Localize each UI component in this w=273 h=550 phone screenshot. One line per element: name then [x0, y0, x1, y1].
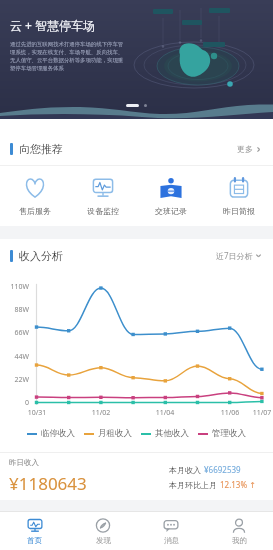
staticText: 12.13% ↑ — [220, 479, 256, 490]
staticText: 设备监控 — [87, 206, 119, 216]
staticText: 消息 — [164, 536, 179, 545]
button[interactable]: 交班记录 — [137, 166, 205, 226]
button[interactable]: 其他收入 — [141, 428, 189, 439]
staticText: 云 + 智慧停车场 — [10, 17, 96, 33]
staticText: 11/06 — [217, 408, 243, 418]
button[interactable]: 更多 — [237, 144, 262, 154]
staticText: 管理收入 — [212, 428, 246, 439]
button[interactable]: 管理收入 — [198, 428, 246, 439]
staticText: 首页 — [27, 536, 42, 545]
staticText: 我的 — [232, 536, 247, 545]
staticText: 售后服务 — [19, 206, 51, 216]
button[interactable]: 近7日分析 — [216, 250, 262, 261]
staticText: 10/31 — [24, 408, 50, 418]
staticText: 交班记录 — [155, 206, 187, 216]
staticText: 11/02 — [88, 408, 114, 418]
staticText: 收入分析 — [19, 249, 63, 263]
button[interactable]: 昨日简报 — [205, 166, 273, 226]
staticText: 更多 — [237, 144, 253, 154]
button[interactable]: 售后服务 — [0, 166, 69, 226]
staticText: 昨日简报 — [223, 206, 255, 216]
staticText: ¥6692539 — [204, 464, 241, 475]
staticText: 通过先进的互联网技术打通停车场的线下停车管理系统，实现在线支付、车场导航、反向找… — [10, 41, 126, 72]
staticText: ¥1180643 — [9, 472, 87, 495]
staticText: 0 — [0, 398, 29, 408]
staticText: 66W — [0, 328, 29, 338]
staticText: 44W — [0, 352, 29, 362]
button[interactable]: 消息 — [137, 512, 205, 550]
staticText: 月租收入 — [98, 428, 132, 439]
button[interactable]: 设备监控 — [69, 166, 137, 226]
staticText: 11/07 — [249, 408, 273, 418]
button[interactable]: 月租收入 — [84, 428, 132, 439]
button[interactable]: 临停收入 — [27, 428, 75, 439]
staticText: 22W — [0, 375, 29, 385]
staticText: 近7日分析 — [216, 250, 253, 261]
staticText: 11/04 — [152, 408, 178, 418]
staticText: 临停收入 — [41, 428, 75, 439]
staticText: 110W — [0, 282, 29, 292]
staticText: 88W — [0, 305, 29, 315]
button[interactable]: 首页 — [0, 512, 69, 550]
staticText: 其他收入 — [155, 428, 189, 439]
staticText: 向您推荐 — [19, 142, 63, 156]
staticText: 本月收入 — [169, 464, 204, 475]
button[interactable]: 我的 — [205, 512, 273, 550]
staticText: 发现 — [96, 536, 111, 545]
staticText: 昨日收入 — [9, 458, 39, 467]
button[interactable]: 发现 — [69, 512, 137, 550]
staticText: 本月环比上月 — [169, 479, 220, 490]
